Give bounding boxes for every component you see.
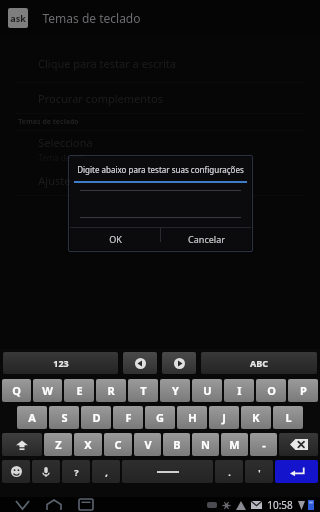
staticText: . (228, 466, 231, 478)
button[interactable]: Enter (275, 460, 318, 483)
staticText: Temas de teclado (18, 117, 79, 127)
button[interactable]: M (221, 433, 248, 456)
staticText: F (125, 410, 132, 425)
staticText: Tema de tec (38, 152, 84, 163)
staticText: X (84, 437, 92, 452)
button[interactable]: U (192, 379, 222, 402)
staticText: Cancelar (188, 233, 225, 245)
button[interactable]: T (128, 379, 158, 402)
staticText: , (105, 466, 108, 478)
staticText: S (61, 410, 68, 425)
button[interactable]: Shift (2, 433, 42, 456)
staticText: C (114, 437, 122, 452)
button[interactable]: Z (44, 433, 72, 456)
button[interactable]: E (64, 379, 94, 402)
button[interactable]: Emoji (2, 460, 30, 483)
button[interactable]: Voice input (32, 460, 60, 483)
staticText: Q (12, 383, 21, 398)
staticText: I (237, 383, 242, 398)
button[interactable]: N (192, 433, 219, 456)
button[interactable]: B (163, 433, 190, 456)
staticText: Selecciona (38, 135, 93, 150)
button[interactable]: Y (160, 379, 190, 402)
button[interactable]: X (74, 433, 102, 456)
staticText: N (201, 437, 210, 452)
button[interactable]: Backspace (279, 433, 318, 456)
staticText: Clique para testar a escrita (38, 56, 176, 71)
button[interactable]: H (177, 406, 207, 429)
button[interactable]: Recent apps (74, 497, 98, 512)
staticText: O (267, 383, 276, 398)
button[interactable]: ? (62, 460, 90, 483)
button[interactable]: V (134, 433, 161, 456)
staticText: T (140, 383, 147, 398)
staticText: E (76, 383, 83, 398)
button[interactable]: Cancelar (161, 228, 251, 250)
staticText: 10:58 (267, 498, 293, 512)
button[interactable]: C (104, 433, 132, 456)
staticText: K (252, 410, 260, 425)
button[interactable]: I (224, 379, 254, 402)
button[interactable]: L (273, 406, 303, 429)
button[interactable]: S (49, 406, 79, 429)
staticText: 123 (53, 357, 69, 369)
staticText: J (222, 410, 226, 425)
button[interactable]: D (81, 406, 111, 429)
button[interactable]: OK (70, 228, 160, 250)
button[interactable]: Move left (123, 352, 157, 374)
button[interactable]: F (113, 406, 143, 429)
staticText: ask (10, 12, 26, 24)
staticText: U (203, 383, 212, 398)
button[interactable]: J (209, 406, 239, 429)
staticText: W (42, 383, 53, 398)
staticText: Digite abaixo para testar suas configura… (77, 164, 244, 175)
button[interactable]: Procurar complementos (0, 83, 320, 113)
button[interactable]: ' (245, 460, 273, 483)
button[interactable]: G (145, 406, 175, 429)
staticText: D (92, 410, 101, 425)
staticText: M (229, 437, 240, 452)
staticText: B (173, 437, 181, 452)
staticText: A (28, 410, 36, 425)
staticText: R (107, 383, 115, 398)
button[interactable]: K (241, 406, 271, 429)
staticText: Y (172, 383, 179, 398)
staticText: OK (109, 233, 122, 245)
staticText: Temas de teclado (42, 10, 141, 26)
button[interactable]: R (96, 379, 126, 402)
staticText: - (262, 437, 266, 452)
button[interactable]: A (17, 406, 47, 429)
button[interactable]: O (256, 379, 286, 402)
button[interactable]: Ajustes (0, 165, 320, 195)
button[interactable]: Q (2, 379, 31, 402)
button[interactable]: , (92, 460, 120, 483)
staticText: Procurar complementos (38, 91, 163, 106)
staticText: ? (74, 466, 79, 478)
button[interactable]: Hide keyboard (10, 497, 34, 512)
staticText: P (300, 383, 307, 398)
staticText: Z (55, 437, 62, 452)
button[interactable]: Selecciona (0, 131, 320, 165)
button[interactable]: ABC (201, 352, 317, 374)
button[interactable]: Move right (162, 352, 196, 374)
button[interactable]: Space (122, 460, 213, 483)
button[interactable]: W (33, 379, 62, 402)
staticText: L (285, 410, 292, 425)
staticText: H (188, 410, 197, 425)
staticText: V (144, 437, 152, 452)
button[interactable]: - (250, 433, 277, 456)
staticText: G (156, 410, 164, 425)
button[interactable]: 123 (3, 352, 118, 374)
button[interactable]: P (288, 379, 318, 402)
button[interactable]: Home (42, 497, 66, 512)
button[interactable]: . (215, 460, 243, 483)
staticText: ABC (250, 357, 268, 369)
staticText: Ajustes (38, 173, 76, 188)
staticText: ' (258, 466, 261, 478)
